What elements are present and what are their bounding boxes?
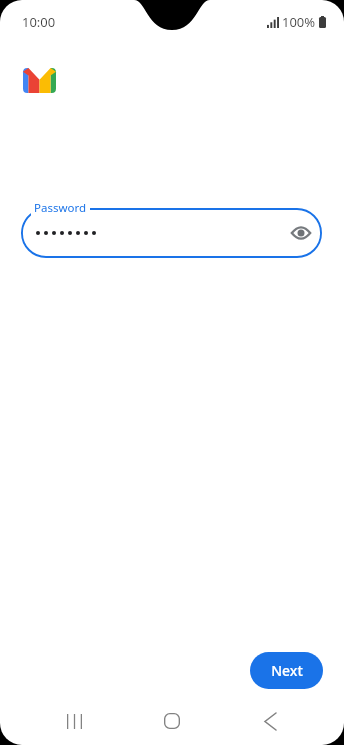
staticText: 100% xyxy=(282,13,316,31)
button[interactable]: Next xyxy=(250,652,323,689)
button[interactable]: Show password xyxy=(287,219,315,247)
staticText: Password xyxy=(34,200,87,216)
button[interactable]: Recent apps xyxy=(50,697,98,745)
staticText: 10:00 xyxy=(22,13,56,31)
button[interactable]: Back xyxy=(246,697,294,745)
staticText: Next xyxy=(271,661,303,680)
button[interactable]: Home xyxy=(148,697,196,745)
button[interactable]: Show password xyxy=(21,208,322,258)
